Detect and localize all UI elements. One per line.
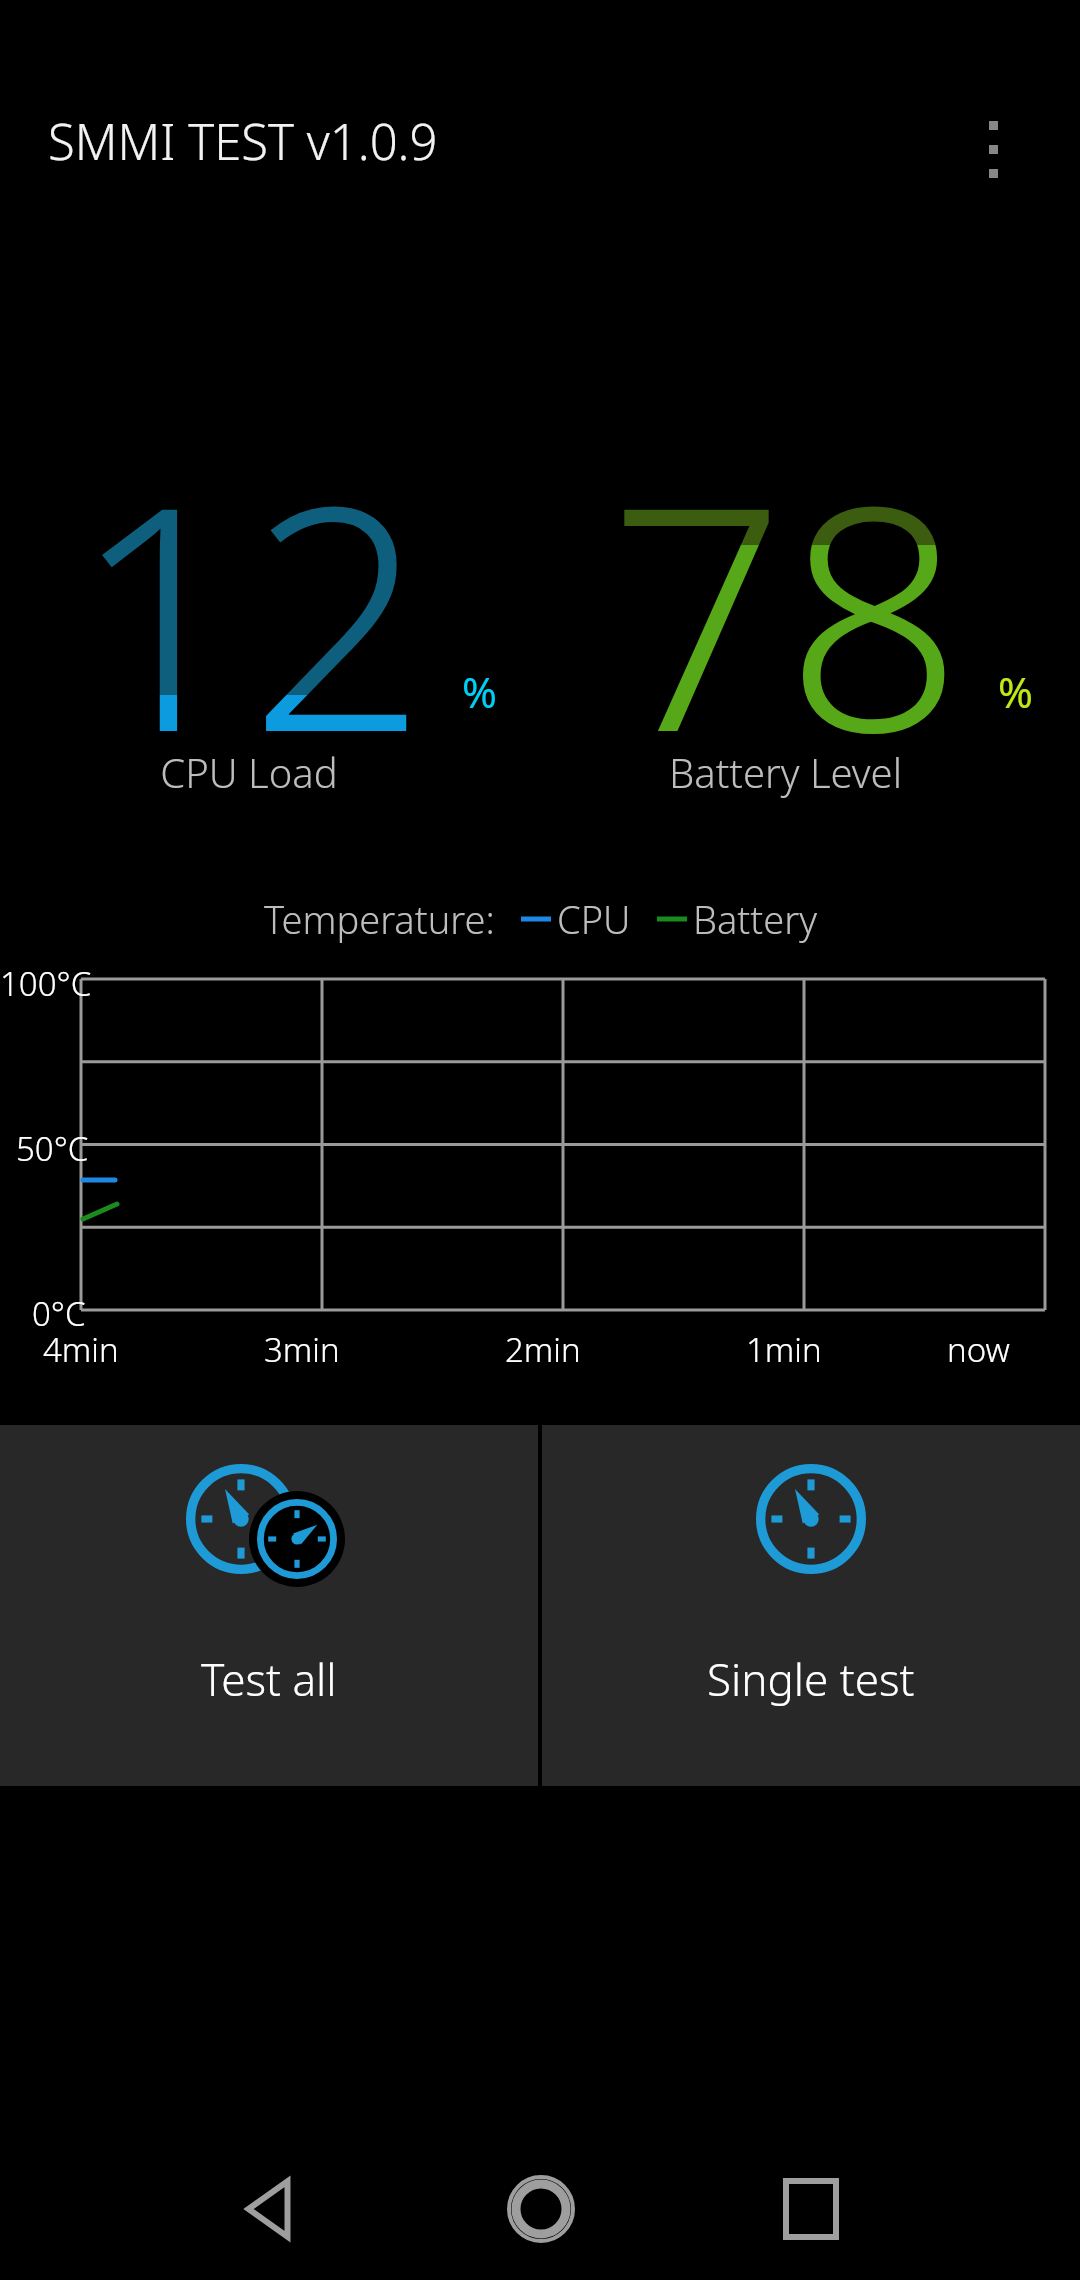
staticText: Temperature: xyxy=(264,893,495,945)
staticText: 100°C xyxy=(0,961,92,1006)
staticText: Test all xyxy=(201,1649,337,1709)
staticText: SMMI TEST v1.0.9 xyxy=(48,108,438,175)
staticText: 2min xyxy=(505,1327,581,1372)
staticText: Single test xyxy=(707,1649,915,1709)
staticText: % xyxy=(998,663,1033,720)
staticText: Battery Level xyxy=(669,745,902,799)
button[interactable]: Back xyxy=(221,2159,321,2259)
button[interactable]: Home xyxy=(491,2159,591,2259)
button[interactable]: Test all xyxy=(0,1425,538,1786)
button[interactable]: Single test xyxy=(542,1425,1080,1786)
staticText: now xyxy=(947,1327,1010,1372)
staticText: CPU Load xyxy=(160,745,338,799)
button[interactable]: More options xyxy=(940,100,1060,240)
staticText: 78 xyxy=(608,400,963,800)
staticText: CPU xyxy=(557,893,631,945)
staticText: 50°C xyxy=(16,1126,89,1171)
staticText: 1min xyxy=(746,1327,822,1372)
staticText: 0°C xyxy=(32,1291,86,1336)
staticText: 4min xyxy=(43,1327,119,1372)
staticText: 12 xyxy=(72,400,427,800)
staticText: Battery xyxy=(693,893,817,945)
button[interactable]: Recent apps xyxy=(761,2159,861,2259)
staticText: % xyxy=(462,663,497,720)
staticText: 3min xyxy=(264,1327,340,1372)
